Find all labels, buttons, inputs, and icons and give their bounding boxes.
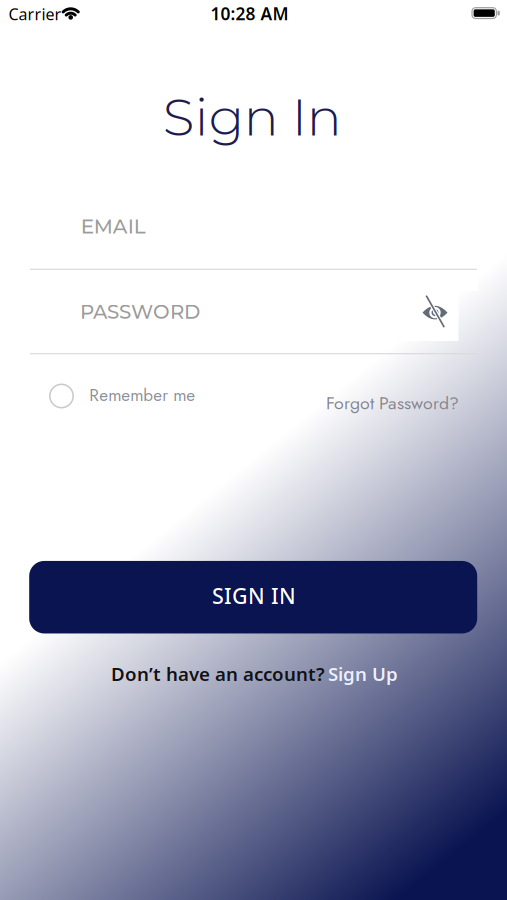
staticText: EMAIL (81, 214, 146, 239)
staticText: PASSWORD (80, 300, 200, 324)
staticText: Remember me (89, 383, 195, 407)
button[interactable]: EMAIL (30, 203, 477, 269)
staticText: Carrier (8, 3, 61, 25)
button[interactable]: PASSWORD (30, 288, 477, 354)
staticText: Sign In (163, 85, 342, 149)
staticText: Sign Up (328, 661, 398, 686)
button[interactable]: SIGN IN (29, 561, 477, 633)
button[interactable]: Sign Up (328, 661, 398, 686)
button[interactable]: Forgot Password? (326, 390, 459, 416)
staticText: SIGN IN (212, 581, 296, 610)
staticText: Forgot Password? (326, 390, 459, 416)
button[interactable] (413, 290, 457, 334)
staticText: 10:28 AM (210, 2, 288, 25)
staticText: Don’t have an account? (111, 661, 325, 686)
button[interactable]: Remember me (48, 374, 208, 418)
